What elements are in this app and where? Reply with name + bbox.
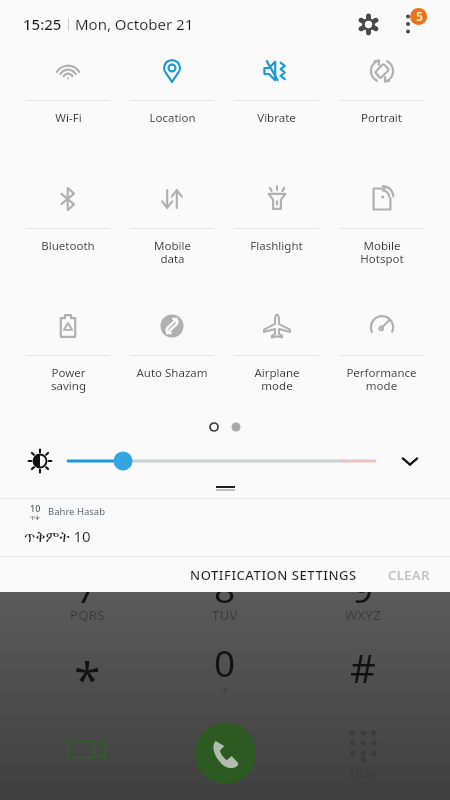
button[interactable]: Brightness [0,444,450,478]
button[interactable]: Settings [348,4,388,44]
staticText: 15:25 [23,14,62,34]
button[interactable]: Location [120,42,224,142]
button[interactable]: Auto Shazam [120,297,224,397]
button[interactable]: * [18,637,156,717]
button[interactable]: Call [195,723,256,784]
staticText: ጥቅ [30,514,41,521]
button[interactable]: Portrait [329,42,434,142]
button[interactable]: Wi-Fi [16,42,120,142]
staticText: NOTIFICATION SETTINGS [190,566,357,584]
staticText: Bluetooth [41,238,95,254]
button[interactable]: More options [400,0,448,48]
staticText: 8 [214,563,236,605]
button[interactable]: Expand [394,445,426,477]
button[interactable]: Vibrate [224,42,329,142]
button[interactable]: 10 [0,502,450,546]
button[interactable]: 9 [294,563,432,643]
button[interactable]: # [294,637,432,717]
button[interactable]: 7 [18,563,156,643]
staticText: + [221,680,229,698]
staticText: Mobile data [154,238,191,267]
staticText: Auto Shazam [136,365,208,381]
staticText: WXYZ [345,606,382,624]
button[interactable]: Mobile data [120,170,224,270]
button[interactable]: 8 [156,563,294,643]
button[interactable]: Performance mode [329,297,434,397]
staticText: Location [149,110,196,126]
staticText: Vibrate [257,110,296,126]
button[interactable]: NOTIFICATION SETTINGS [182,558,365,592]
button[interactable]: 0 [156,637,294,717]
staticText: 9 [352,563,374,605]
button[interactable]: Mobile Hotspot [329,170,434,270]
button[interactable]: Flashlight [224,170,329,270]
button[interactable]: Hide [294,706,432,800]
staticText: Mon, October 21 [75,14,194,34]
staticText: Portrait [361,110,402,126]
staticText: # [350,641,376,683]
button[interactable]: Video call [18,706,156,800]
staticText: Flashlight [250,238,303,254]
staticText: Airplane mode [254,365,300,394]
staticText: Bahre Hasab [48,505,106,518]
staticText: TUV [212,606,238,624]
staticText: * [74,646,101,688]
staticText: ጥቅምት 10 [24,526,91,546]
button[interactable]: Airplane mode [224,297,329,397]
button[interactable]: Power saving [16,297,120,397]
staticText: Mobile Hotspot [360,238,404,267]
staticText: Performance mode [346,365,417,394]
staticText: 7 [76,563,98,605]
button[interactable]: CLEAR [380,558,438,592]
staticText: CLEAR [388,566,430,584]
staticText: Wi-Fi [55,110,82,126]
staticText: Power saving [51,365,86,394]
staticText: 10 [30,502,41,514]
staticText: 5 [416,8,423,24]
staticText: 0 [214,637,236,679]
staticText: PQRS [70,606,105,624]
button[interactable]: Bluetooth [16,170,120,270]
